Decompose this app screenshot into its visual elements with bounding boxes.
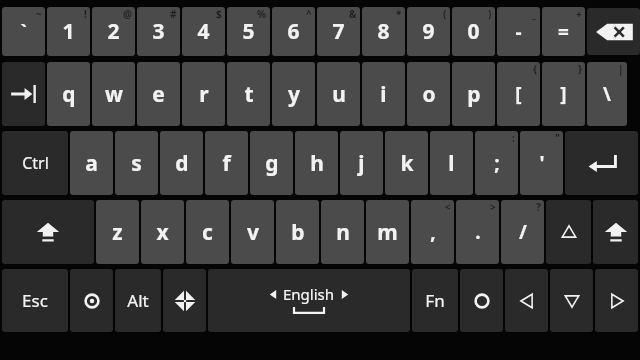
- button[interactable]: Space, English: [208, 269, 410, 332]
- button[interactable]: q: [47, 62, 90, 126]
- staticText: s: [131, 149, 142, 178]
- button[interactable]: Left: [505, 269, 548, 332]
- button[interactable]: .: [456, 200, 499, 264]
- button[interactable]: -: [497, 7, 540, 56]
- button[interactable]: l: [430, 131, 473, 195]
- staticText: f: [222, 149, 231, 178]
- button[interactable]: Menu: [163, 269, 206, 332]
- staticText: ]: [560, 81, 567, 107]
- button[interactable]: m: [366, 200, 409, 264]
- staticText: w: [105, 80, 123, 109]
- button[interactable]: 6: [272, 7, 315, 56]
- staticText: Fn: [425, 289, 445, 312]
- button[interactable]: s: [115, 131, 158, 195]
- button[interactable]: [: [497, 62, 540, 126]
- staticText: t: [244, 80, 254, 109]
- button[interactable]: Esc: [2, 269, 68, 332]
- staticText: \: [603, 81, 611, 107]
- staticText: [: [515, 81, 522, 107]
- button[interactable]: Alt: [115, 269, 161, 332]
- staticText: ': [539, 150, 545, 176]
- button[interactable]: Shift: [2, 200, 94, 264]
- button[interactable]: y: [272, 62, 315, 126]
- staticText: b: [291, 218, 305, 247]
- button[interactable]: Up: [546, 200, 591, 264]
- button[interactable]: o: [407, 62, 450, 126]
- button[interactable]: ,: [411, 200, 454, 264]
- staticText: *: [396, 7, 402, 21]
- button[interactable]: Settings: [70, 269, 113, 332]
- button[interactable]: Power: [460, 269, 503, 332]
- button[interactable]: 0: [452, 7, 495, 56]
- button[interactable]: 9: [407, 7, 450, 56]
- button[interactable]: ;: [475, 131, 518, 195]
- staticText: }: [578, 62, 582, 76]
- staticText: ;: [494, 150, 500, 176]
- button[interactable]: =: [542, 7, 585, 56]
- button[interactable]: ]: [542, 62, 585, 126]
- button[interactable]: p: [452, 62, 495, 126]
- staticText: <: [445, 200, 451, 214]
- button[interactable]: Shift: [593, 200, 638, 264]
- button[interactable]: Down: [550, 269, 593, 332]
- staticText: :: [512, 131, 515, 145]
- button[interactable]: Tab: [2, 62, 45, 126]
- button[interactable]: Ctrl: [2, 131, 68, 195]
- staticText: g: [265, 149, 279, 178]
- button[interactable]: r: [182, 62, 225, 126]
- button[interactable]: k: [385, 131, 428, 195]
- button[interactable]: 8: [362, 7, 405, 56]
- button[interactable]: 4: [182, 7, 225, 56]
- staticText: 1: [62, 17, 75, 46]
- button[interactable]: Right: [595, 269, 638, 332]
- staticText: a: [85, 149, 98, 178]
- button[interactable]: j: [340, 131, 383, 195]
- staticText: #: [170, 7, 177, 21]
- button[interactable]: `: [2, 7, 45, 56]
- staticText: o: [422, 80, 436, 109]
- button[interactable]: 7: [317, 7, 360, 56]
- staticText: v: [247, 218, 259, 247]
- button[interactable]: g: [250, 131, 293, 195]
- button[interactable]: a: [70, 131, 113, 195]
- staticText: Alt: [127, 289, 149, 312]
- button[interactable]: Fn: [412, 269, 458, 332]
- button[interactable]: d: [160, 131, 203, 195]
- staticText: |: [618, 62, 624, 76]
- button[interactable]: t: [227, 62, 270, 126]
- button[interactable]: Backspace: [587, 8, 640, 55]
- button[interactable]: v: [231, 200, 274, 264]
- staticText: >: [490, 200, 496, 214]
- staticText: +: [576, 7, 582, 21]
- button[interactable]: 2: [92, 7, 135, 56]
- staticText: @: [123, 7, 132, 21]
- button[interactable]: ': [520, 131, 563, 195]
- button[interactable]: n: [321, 200, 364, 264]
- button[interactable]: /: [501, 200, 544, 264]
- button[interactable]: x: [141, 200, 184, 264]
- button[interactable]: 5: [227, 7, 270, 56]
- button[interactable]: w: [92, 62, 135, 126]
- staticText: ,: [430, 219, 436, 245]
- staticText: ^: [306, 7, 312, 21]
- staticText: e: [152, 80, 165, 109]
- staticText: 8: [377, 17, 390, 46]
- staticText: j: [358, 149, 365, 178]
- button[interactable]: e: [137, 62, 180, 126]
- staticText: $: [216, 7, 222, 21]
- button[interactable]: f: [205, 131, 248, 195]
- button[interactable]: b: [276, 200, 319, 264]
- staticText: %: [257, 7, 267, 21]
- button[interactable]: i: [362, 62, 405, 126]
- button[interactable]: z: [96, 200, 139, 264]
- staticText: 3: [152, 17, 165, 46]
- button[interactable]: c: [186, 200, 229, 264]
- button[interactable]: u: [317, 62, 360, 126]
- staticText: c: [202, 218, 213, 247]
- staticText: 5: [242, 17, 255, 46]
- button[interactable]: 3: [137, 7, 180, 56]
- button[interactable]: 1: [47, 7, 90, 56]
- button[interactable]: \: [587, 62, 627, 126]
- button[interactable]: Enter: [565, 131, 638, 195]
- button[interactable]: h: [295, 131, 338, 195]
